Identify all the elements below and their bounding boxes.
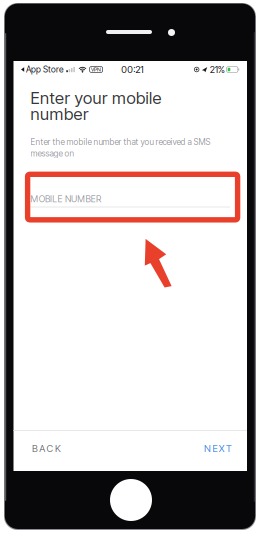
staticText: number [30, 104, 88, 124]
staticText: VPN [91, 66, 101, 73]
staticText: App Store [26, 64, 64, 75]
staticText: NEXT [204, 443, 232, 454]
button[interactable]: NEXT [190, 435, 247, 467]
staticText: message on [30, 148, 74, 158]
button[interactable]: BACK [13, 435, 75, 467]
staticText: Enter the mobile number that you receive… [30, 137, 210, 147]
staticText: MOBILE NUMBER [30, 194, 101, 204]
staticText: 00:21 [121, 64, 143, 75]
staticText: 21% [210, 64, 225, 75]
staticText: Enter your mobile [30, 88, 161, 108]
staticText: BACK [32, 443, 61, 454]
